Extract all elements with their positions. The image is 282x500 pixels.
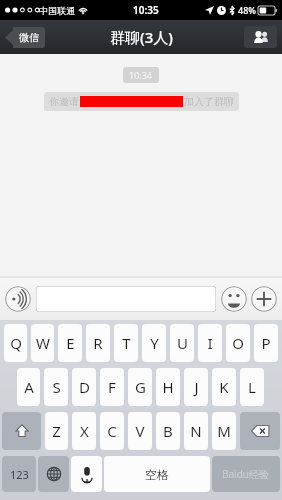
staticText: R: [93, 333, 103, 353]
button[interactable]: 微信: [5, 27, 45, 48]
button[interactable]: V: [128, 412, 152, 450]
staticText: S: [52, 377, 61, 397]
staticText: C: [107, 421, 117, 441]
button[interactable]: G: [128, 368, 152, 406]
staticText: F: [108, 377, 116, 397]
staticText: V: [135, 421, 145, 441]
staticText: N: [190, 421, 202, 441]
staticText: 微信: [19, 31, 39, 44]
button[interactable]: Group members: [244, 26, 277, 48]
button[interactable]: T: [114, 324, 138, 362]
button[interactable]: S: [44, 368, 68, 406]
staticText: G: [135, 377, 146, 397]
staticText: D: [79, 377, 90, 397]
staticText: Z: [52, 421, 61, 441]
staticText: T: [122, 333, 131, 353]
staticText: H: [162, 377, 174, 397]
button[interactable]: Y: [142, 324, 166, 362]
button[interactable]: Shift: [2, 412, 41, 450]
button[interactable]: Emoji: [221, 286, 247, 312]
staticText: 48%: [238, 4, 256, 16]
button[interactable]: K: [212, 368, 236, 406]
button[interactable]: I: [198, 324, 222, 362]
button[interactable]: N: [184, 412, 208, 450]
staticText: E: [66, 333, 75, 353]
staticText: M: [217, 421, 231, 441]
staticText: J: [194, 377, 199, 397]
button[interactable]: Dictation: [71, 456, 102, 492]
staticText: W: [36, 333, 50, 353]
staticText: 10:35: [133, 3, 159, 17]
staticText: Y: [150, 333, 159, 353]
button[interactable]: M: [212, 412, 236, 450]
button[interactable]: B: [156, 412, 180, 450]
button[interactable]: L: [240, 368, 264, 406]
button[interactable]: Z: [45, 412, 68, 450]
button[interactable]: W: [31, 324, 54, 362]
button[interactable]: R: [86, 324, 110, 362]
button[interactable]: 空格: [104, 456, 210, 492]
button[interactable]: O: [226, 324, 250, 362]
button[interactable]: F: [100, 368, 124, 406]
button[interactable]: C: [100, 412, 124, 450]
button[interactable]: Backspace: [240, 412, 280, 450]
button[interactable]: Baidu经验: [212, 456, 280, 492]
staticText: I: [207, 333, 213, 353]
staticText: 中国联通: [39, 5, 75, 16]
staticText: 空格: [145, 467, 169, 482]
staticText: U: [177, 333, 188, 353]
button[interactable]: D: [72, 368, 96, 406]
button[interactable]: P: [254, 324, 278, 362]
staticText: 123: [10, 467, 29, 482]
button[interactable]: J: [184, 368, 208, 406]
staticText: Baidu经验: [222, 467, 270, 481]
button[interactable]: A: [17, 368, 40, 406]
staticText: B: [163, 421, 173, 441]
button[interactable]: Q: [4, 324, 27, 362]
button[interactable]: More: [251, 286, 277, 312]
staticText: 你邀请: [49, 95, 79, 108]
staticText: Q: [10, 333, 22, 353]
staticText: O: [232, 333, 244, 353]
button[interactable]: X: [72, 412, 96, 450]
button[interactable]: H: [156, 368, 180, 406]
button[interactable]: Voice input: [5, 286, 31, 312]
staticText: A: [24, 377, 34, 397]
button[interactable]: Numbers: [2, 456, 36, 492]
button[interactable]: E: [58, 324, 82, 362]
staticText: L: [248, 377, 256, 397]
staticText: P: [261, 333, 271, 353]
button[interactable]: U: [170, 324, 194, 362]
button[interactable]: [36, 286, 216, 312]
staticText: 加入了群聊: [184, 95, 234, 108]
staticText: X: [80, 421, 89, 441]
staticText: 10:34: [129, 69, 153, 81]
staticText: K: [219, 377, 229, 397]
button[interactable]: Switch keyboard: [38, 456, 69, 492]
staticText: 群聊(3人): [110, 27, 173, 47]
